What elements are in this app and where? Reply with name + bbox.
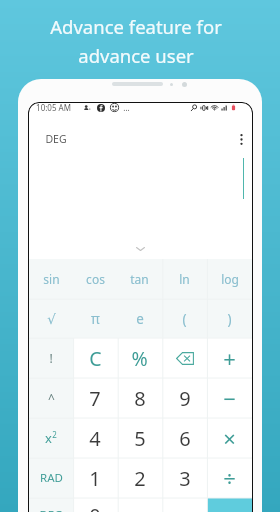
button[interactable]: 6 xyxy=(162,418,207,458)
button[interactable]: 0 xyxy=(73,498,117,512)
button[interactable]: log xyxy=(207,259,252,299)
button[interactable]: 3 xyxy=(162,458,207,498)
button[interactable]: ln xyxy=(162,259,207,299)
staticText: log xyxy=(221,271,239,287)
staticText: 4 xyxy=(89,425,101,452)
button[interactable]: e xyxy=(117,299,162,338)
staticText: ln xyxy=(179,271,190,287)
staticText: % xyxy=(131,345,148,372)
staticText: advance user xyxy=(78,43,194,68)
staticText: − xyxy=(223,383,236,413)
staticText: x xyxy=(45,429,52,447)
staticText: DEG xyxy=(45,132,67,146)
staticText: 1 xyxy=(89,465,101,492)
button[interactable]: tan xyxy=(117,259,162,299)
button[interactable]: sin xyxy=(29,259,73,299)
staticText: 2 xyxy=(52,429,57,440)
button[interactable]: − xyxy=(207,378,252,418)
staticText: 10:05 AM xyxy=(36,102,71,113)
staticText: 9 xyxy=(179,385,191,412)
button[interactable]: ! xyxy=(29,338,73,378)
button[interactable]: ( xyxy=(162,299,207,338)
other: Backspace xyxy=(176,352,194,365)
staticText: sin xyxy=(43,271,60,287)
staticText: ^ xyxy=(48,390,55,406)
staticText: DEG xyxy=(39,507,63,512)
button[interactable]: Backspace xyxy=(162,338,207,378)
staticText: ÷ xyxy=(223,463,236,493)
button[interactable]: cos xyxy=(73,259,117,299)
staticText: 3 xyxy=(179,465,191,492)
button[interactable]: DEG xyxy=(29,498,73,512)
staticText: Advance feature for xyxy=(50,14,222,39)
button[interactable]: C xyxy=(73,338,117,378)
staticText: 7 xyxy=(89,385,101,412)
button[interactable]: 2 xyxy=(117,458,162,498)
button[interactable]: x xyxy=(29,418,73,458)
staticText: 8 xyxy=(134,385,146,412)
button[interactable]: 7 xyxy=(73,378,117,418)
staticText: ) xyxy=(227,310,232,328)
staticText: 0 xyxy=(89,502,101,512)
button[interactable]: √ xyxy=(29,299,73,338)
button[interactable]: 9 xyxy=(162,378,207,418)
button[interactable]: × xyxy=(207,418,252,458)
staticText: tan xyxy=(130,271,149,287)
button[interactable]: + xyxy=(207,338,252,378)
button[interactable]: 5 xyxy=(117,418,162,458)
staticText: 6 xyxy=(179,425,191,452)
button[interactable]: ^ xyxy=(29,378,73,418)
staticText: √ xyxy=(47,311,56,327)
staticText: C xyxy=(89,345,102,372)
button[interactable]: π xyxy=(73,299,117,338)
button[interactable]: % xyxy=(117,338,162,378)
staticText: × xyxy=(223,423,236,453)
button[interactable]: RAD xyxy=(29,458,73,498)
button[interactable]: 8 xyxy=(117,378,162,418)
staticText: cos xyxy=(86,271,105,287)
button[interactable]: = xyxy=(207,498,252,512)
staticText: 5 xyxy=(134,425,146,452)
staticText: + xyxy=(223,343,236,373)
staticText: ... xyxy=(123,102,130,113)
staticText: 2 xyxy=(134,465,146,492)
button[interactable]: ) xyxy=(207,299,252,338)
staticText: RAD xyxy=(40,470,63,486)
staticText: ! xyxy=(49,350,53,366)
staticText: π xyxy=(91,310,100,328)
staticText: ( xyxy=(182,310,187,328)
staticText: e xyxy=(136,310,144,328)
button[interactable]: 4 xyxy=(73,418,117,458)
button[interactable]: More options xyxy=(230,124,252,154)
button[interactable]: 1 xyxy=(73,458,117,498)
button[interactable]: ÷ xyxy=(207,458,252,498)
